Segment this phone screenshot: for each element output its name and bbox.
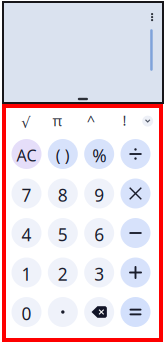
staticText: 4 (21, 223, 31, 246)
button[interactable]: Divide (120, 139, 150, 169)
staticText: 5 (58, 223, 68, 246)
staticText: ( ) (56, 145, 70, 166)
staticText: 9 (94, 183, 104, 206)
button[interactable]: Add (120, 257, 150, 287)
button[interactable]: 2 (48, 257, 78, 287)
button[interactable]: AC (11, 139, 41, 169)
staticText: 0 (21, 302, 31, 325)
staticText: 8 (58, 183, 68, 206)
button[interactable]: 6 (84, 218, 114, 248)
button[interactable]: More options (143, 7, 161, 27)
staticText: 2 (58, 262, 68, 285)
staticText: √ (21, 114, 30, 131)
button[interactable]: 3 (84, 257, 114, 287)
button[interactable]: 7 (11, 178, 41, 208)
button[interactable]: ^ (78, 108, 104, 134)
button[interactable]: 5 (48, 218, 78, 248)
staticText: π (53, 111, 63, 130)
button[interactable]: 4 (11, 218, 41, 248)
button[interactable]: % (84, 139, 114, 169)
button[interactable]: 9 (84, 178, 114, 208)
button[interactable]: Subtract (120, 218, 150, 248)
button[interactable]: 1 (11, 257, 41, 287)
button[interactable]: Decimal point (48, 297, 78, 327)
staticText: 1 (21, 262, 31, 285)
staticText: ^ (87, 111, 95, 130)
button[interactable]: √ (13, 108, 39, 134)
button[interactable]: Equals (120, 297, 150, 327)
button[interactable]: 0 (11, 297, 41, 327)
staticText: ! (122, 110, 126, 130)
staticText: AC (16, 145, 36, 166)
button[interactable]: π (45, 108, 71, 134)
button[interactable]: Backspace (84, 297, 114, 327)
button[interactable]: Show more functions (135, 108, 161, 134)
button[interactable]: ! (111, 108, 137, 134)
button[interactable]: 8 (48, 178, 78, 208)
staticText: 6 (94, 223, 104, 246)
button[interactable]: Multiply (120, 178, 150, 208)
button[interactable]: ( ) (48, 139, 78, 169)
staticText: 7 (21, 183, 31, 206)
staticText: 3 (94, 262, 104, 285)
staticText: % (92, 144, 106, 167)
